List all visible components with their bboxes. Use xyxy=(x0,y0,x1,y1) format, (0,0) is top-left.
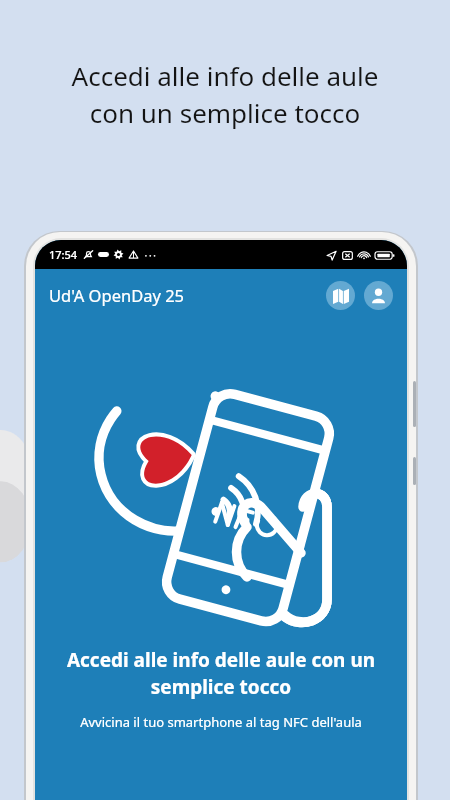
staticText: Accedi alle info delle aule con un sempl… xyxy=(49,647,393,700)
button[interactable]: Map xyxy=(326,281,355,310)
button[interactable]: Account xyxy=(364,281,393,310)
staticText: Accedi alle info delle aule con un sempl… xyxy=(0,58,450,131)
staticText: Ud'A OpenDay 25 xyxy=(49,284,326,306)
staticText: Avvicina il tuo smartphone al tag NFC de… xyxy=(55,713,387,731)
staticText: 17:54 xyxy=(49,247,78,262)
